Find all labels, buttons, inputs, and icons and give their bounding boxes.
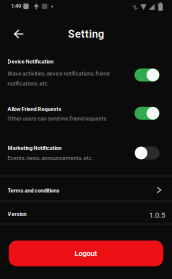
button[interactable]: Logout <box>9 240 163 266</box>
button[interactable]: Marketing Notification <box>134 146 159 159</box>
staticText: Version <box>7 211 26 217</box>
button[interactable]: Back <box>9 24 29 44</box>
staticText: Terms and conditions <box>7 187 59 194</box>
staticText: 1.0.5 <box>149 210 165 219</box>
staticText: Wave activities, device notifications, f… <box>7 70 109 77</box>
staticText: Setting <box>68 28 104 40</box>
button[interactable]: Terms and conditions <box>0 176 172 201</box>
staticText: 1:49 <box>11 3 21 9</box>
staticText: Logout <box>74 249 97 258</box>
staticText: Other users can send me friend requests <box>7 115 106 122</box>
staticText: Device Notification <box>7 58 53 65</box>
staticText: Marketing Notification <box>7 145 61 151</box>
staticText: notifications, etc. <box>7 80 48 87</box>
button[interactable]: Allow Friend Requests <box>134 107 159 120</box>
staticText: Allow Friend Requests <box>7 106 61 112</box>
button[interactable]: Device Notification <box>134 68 159 81</box>
staticText: Events, news, announcements, etc. <box>7 155 92 161</box>
